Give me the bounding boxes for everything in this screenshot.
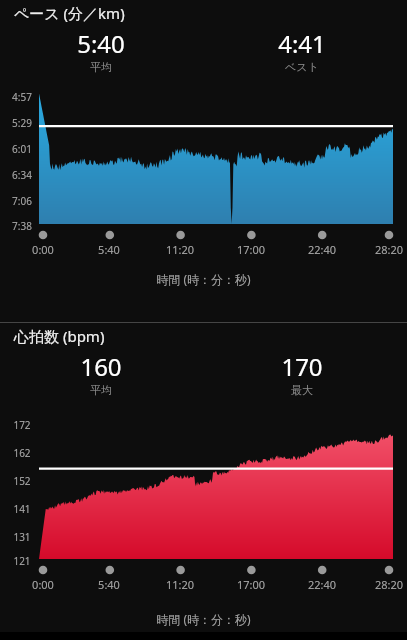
button[interactable]: 心拍数 (bpm) bbox=[0, 323, 407, 632]
staticText: 22:40 bbox=[298, 577, 346, 592]
button[interactable]: ペース (分／km) bbox=[0, 0, 407, 322]
staticText: 6:01 bbox=[8, 142, 36, 156]
staticText: 5:40 bbox=[85, 242, 133, 257]
staticText: 7:06 bbox=[8, 194, 36, 208]
staticText: 17:00 bbox=[227, 242, 275, 257]
staticText: 0:00 bbox=[19, 577, 67, 592]
staticText: 28:20 bbox=[365, 577, 407, 592]
staticText: 7:38 bbox=[8, 219, 36, 233]
staticText: 162 bbox=[8, 446, 36, 460]
staticText: 11:20 bbox=[156, 577, 204, 592]
staticText: 22:40 bbox=[298, 242, 346, 257]
staticText: 152 bbox=[8, 474, 36, 488]
staticText: 17:00 bbox=[227, 577, 275, 592]
staticText: 4:57 bbox=[8, 90, 36, 104]
staticText: 141 bbox=[8, 502, 36, 516]
staticText: 最大 bbox=[271, 383, 333, 397]
staticText: 11:20 bbox=[156, 242, 204, 257]
staticText: 時間 (時：分：秒) bbox=[0, 611, 407, 627]
staticText: 160 bbox=[70, 350, 132, 383]
staticText: 6:34 bbox=[8, 168, 36, 182]
staticText: 5:29 bbox=[8, 116, 36, 130]
staticText: 5:40 bbox=[70, 27, 132, 60]
staticText: 170 bbox=[271, 350, 333, 383]
staticText: 0:00 bbox=[19, 242, 67, 257]
staticText: 121 bbox=[8, 554, 36, 568]
staticText: 28:20 bbox=[365, 242, 407, 257]
staticText: 172 bbox=[8, 418, 36, 432]
staticText: 131 bbox=[8, 530, 36, 544]
staticText: 平均 bbox=[70, 60, 132, 74]
staticText: ベスト bbox=[271, 60, 333, 74]
staticText: 4:41 bbox=[271, 27, 333, 60]
staticText: 心拍数 (bpm) bbox=[14, 326, 105, 346]
staticText: ペース (分／km) bbox=[14, 3, 125, 23]
staticText: 平均 bbox=[70, 383, 132, 397]
staticText: 時間 (時：分：秒) bbox=[0, 271, 407, 287]
staticText: 5:40 bbox=[85, 577, 133, 592]
